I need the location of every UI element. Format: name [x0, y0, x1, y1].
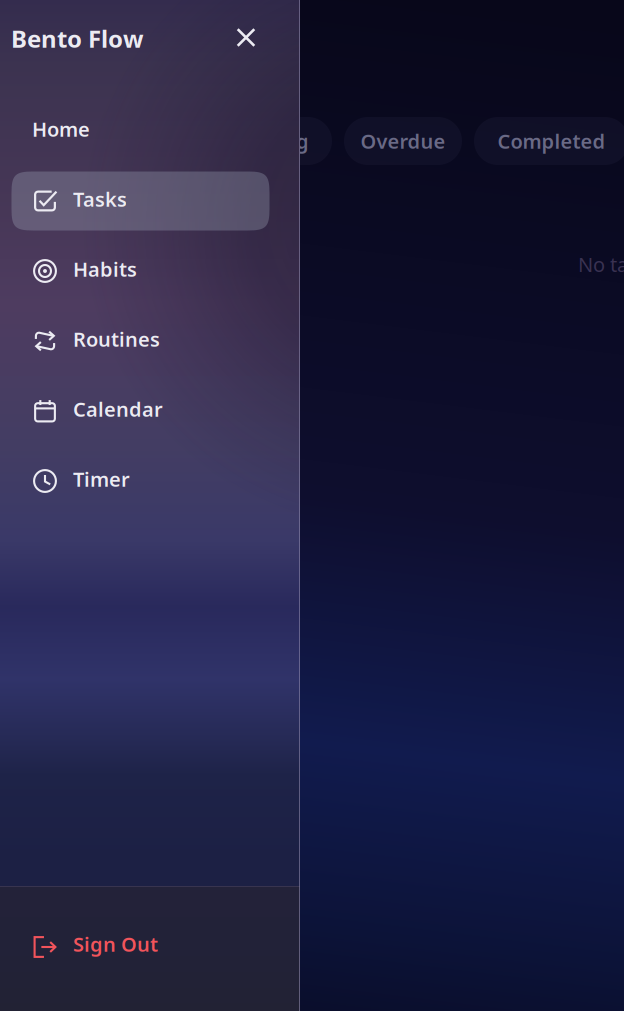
staticText: Habits	[73, 256, 137, 282]
button[interactable]: Routines	[0, 306, 300, 376]
button[interactable]: Home	[0, 96, 300, 166]
staticText: No tasks yet	[578, 251, 624, 278]
staticText: Routines	[73, 326, 160, 352]
button[interactable]: Completed	[474, 117, 624, 165]
button[interactable]: Timer	[0, 446, 300, 516]
staticText: Bento Flow	[11, 23, 144, 54]
button[interactable]: Overdue	[344, 117, 462, 165]
staticText: Pending	[227, 128, 309, 154]
button[interactable]: Pending	[204, 117, 332, 165]
button[interactable]: Sign Out	[0, 887, 300, 1011]
button[interactable]: Tasks	[0, 166, 300, 236]
button[interactable]: Habits	[0, 236, 300, 306]
staticText: Tasks	[73, 186, 127, 212]
staticText: Sign Out	[73, 931, 158, 957]
staticText: Calendar	[73, 396, 163, 422]
staticText: Overdue	[360, 128, 445, 154]
button[interactable]: Calendar	[0, 376, 300, 446]
staticText: Timer	[73, 466, 130, 492]
button[interactable]: Close menu	[224, 15, 268, 59]
staticText: Home	[32, 116, 90, 142]
staticText: Completed	[497, 128, 605, 154]
